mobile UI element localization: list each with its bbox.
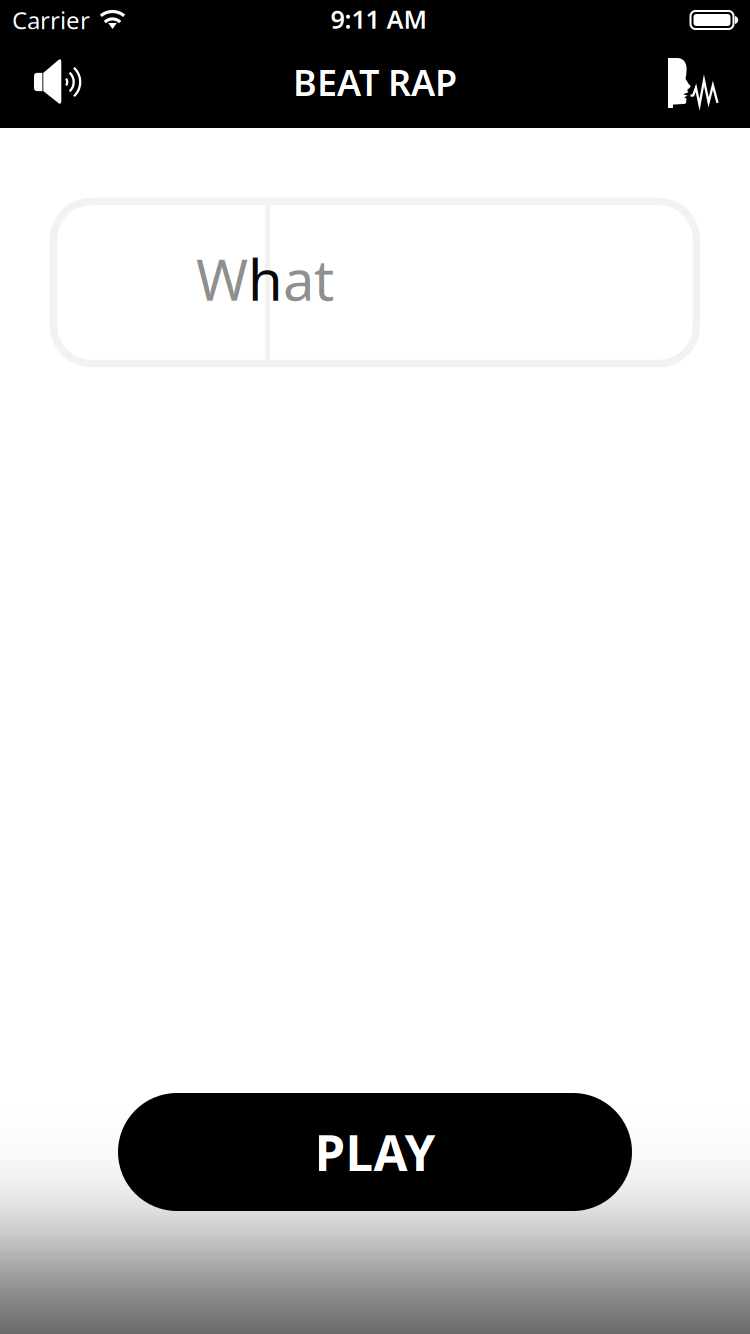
staticText: h [248, 242, 283, 316]
button[interactable]: Voice [646, 40, 750, 128]
button[interactable]: Sound [0, 40, 103, 128]
staticText: 9:11 AM [330, 2, 427, 36]
staticText: PLAY [314, 1119, 435, 1185]
button[interactable]: PLAY [118, 1093, 632, 1211]
staticText: BEAT RAP [293, 58, 457, 106]
staticText: at [283, 242, 334, 316]
staticText: W [196, 242, 248, 316]
staticText: Carrier [12, 4, 90, 36]
